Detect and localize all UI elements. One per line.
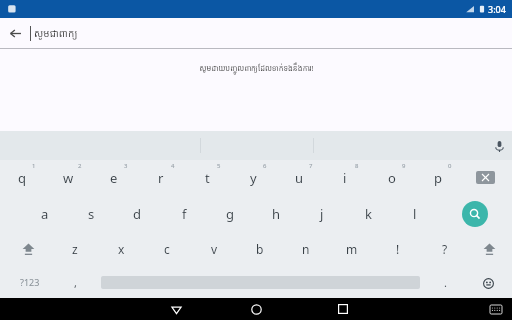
staticText: t — [205, 169, 210, 187]
button[interactable]: Backspace — [476, 171, 495, 184]
button[interactable]: l — [392, 196, 438, 232]
staticText: g — [226, 205, 234, 223]
staticText: s — [88, 205, 95, 223]
staticText: 8 — [355, 162, 359, 170]
button[interactable]: b — [237, 232, 283, 266]
button[interactable]: Back — [156, 298, 196, 320]
button[interactable]: y — [230, 160, 276, 196]
staticText: v — [211, 241, 218, 257]
staticText: w — [63, 169, 74, 187]
staticText: y — [250, 169, 257, 187]
button[interactable]: e — [91, 160, 137, 196]
staticText: r — [158, 169, 164, 187]
staticText: 1 — [32, 162, 36, 170]
staticText: , — [74, 275, 77, 290]
button[interactable]: Back — [0, 18, 30, 48]
staticText: n — [302, 241, 310, 257]
button[interactable]: m — [329, 232, 375, 266]
staticText: h — [272, 205, 281, 223]
staticText: 0 — [448, 162, 452, 170]
button[interactable]: h — [253, 196, 299, 232]
button[interactable]: c — [144, 232, 190, 266]
staticText: 4 — [171, 162, 175, 170]
staticText: 3 — [124, 162, 128, 170]
button[interactable]: ! — [375, 232, 421, 266]
staticText: u — [295, 169, 304, 187]
button[interactable]: z — [52, 232, 98, 266]
button[interactable]: Recents — [323, 298, 363, 320]
button[interactable]: w — [45, 160, 91, 196]
button[interactable]: , — [52, 266, 98, 298]
button[interactable]: k — [345, 196, 391, 232]
staticText: ! — [396, 241, 400, 257]
staticText: 7 — [309, 162, 313, 170]
staticText: . — [444, 275, 447, 290]
staticText: z — [72, 241, 78, 257]
staticText: b — [256, 241, 264, 257]
staticText: 5 — [217, 162, 221, 170]
staticText: o — [388, 169, 396, 187]
button[interactable]: ? — [422, 232, 468, 266]
button[interactable]: Emoji — [477, 272, 499, 294]
staticText: 2 — [78, 162, 82, 170]
button[interactable]: a — [22, 196, 68, 232]
button[interactable]: Voice input — [486, 133, 512, 159]
button[interactable]: f — [161, 196, 207, 232]
button[interactable]: ?123 — [10, 266, 50, 298]
staticText: ? — [442, 241, 448, 257]
button[interactable]: o — [369, 160, 415, 196]
button[interactable]: Search — [462, 201, 488, 227]
button[interactable]: Home — [236, 298, 276, 320]
button[interactable]: t — [184, 160, 230, 196]
button[interactable]: x — [98, 232, 144, 266]
staticText: a — [41, 205, 49, 223]
button[interactable]: n — [283, 232, 329, 266]
staticText: p — [434, 169, 442, 187]
button[interactable]: Shift — [476, 232, 502, 266]
button[interactable]: Shift — [15, 232, 41, 266]
staticText: 3:04 — [488, 3, 506, 15]
button[interactable]: u — [276, 160, 322, 196]
staticText: f — [182, 205, 187, 223]
staticText: c — [164, 241, 170, 257]
staticText: d — [133, 205, 141, 223]
staticText: សូមជាពាក្យ — [34, 26, 78, 40]
staticText: 6 — [263, 162, 267, 170]
staticText: j — [320, 205, 324, 223]
button[interactable]: s — [68, 196, 114, 232]
staticText: k — [365, 205, 372, 223]
staticText: x — [118, 241, 125, 257]
button[interactable]: Switch keyboard — [486, 298, 506, 320]
staticText: i — [343, 169, 347, 187]
button[interactable]: r — [138, 160, 184, 196]
button[interactable]: g — [207, 196, 253, 232]
staticText: ?123 — [20, 276, 40, 288]
button[interactable]: i — [322, 160, 368, 196]
button[interactable]: p — [415, 160, 461, 196]
staticText: l — [413, 205, 417, 223]
button[interactable]: j — [299, 196, 345, 232]
staticText: 9 — [402, 162, 406, 170]
staticText: សូមជាយបញ្ចូលពាក្យដែលទាក់ទងនឹងការ! — [199, 63, 314, 73]
button[interactable]: v — [191, 232, 237, 266]
staticText: m — [346, 241, 358, 257]
button[interactable]: d — [114, 196, 160, 232]
staticText: e — [110, 169, 118, 187]
button[interactable]: . — [422, 266, 468, 298]
staticText: q — [18, 169, 26, 187]
button[interactable]: q — [0, 160, 45, 196]
